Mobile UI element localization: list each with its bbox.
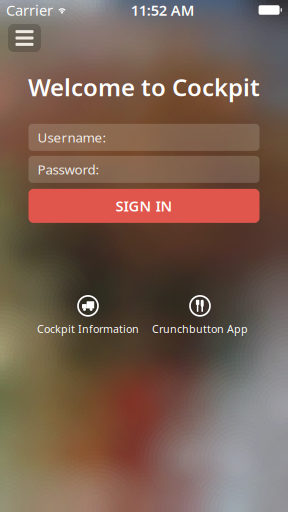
staticText: Cockpit Information bbox=[37, 322, 139, 336]
button[interactable]: Crunchbutton App bbox=[144, 295, 256, 336]
button[interactable]: Username: bbox=[28, 124, 259, 151]
staticText: Crunchbutton App bbox=[152, 322, 248, 336]
staticText: 11:52 AM bbox=[131, 0, 195, 20]
button[interactable]: Password: bbox=[28, 156, 259, 183]
staticText: Carrier bbox=[6, 0, 53, 20]
staticText: Welcome to Cockpit bbox=[28, 71, 260, 103]
staticText: Password: bbox=[37, 160, 99, 178]
button[interactable]: SIGN IN bbox=[28, 189, 259, 223]
staticText: Username: bbox=[37, 128, 106, 146]
button[interactable]: Cockpit Information bbox=[32, 295, 144, 336]
staticText: SIGN IN bbox=[115, 196, 172, 216]
button[interactable]: Menu bbox=[8, 24, 41, 52]
